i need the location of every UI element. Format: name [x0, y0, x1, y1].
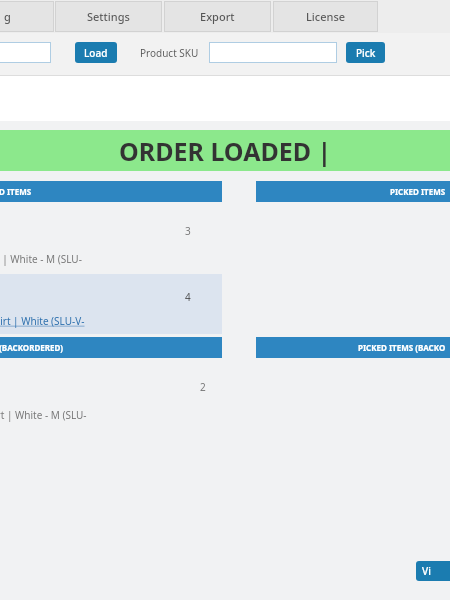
staticText: ORDER LOADED | — [119, 134, 332, 168]
staticText: t | White - M (SLU- — [0, 252, 82, 266]
button[interactable]: Pick — [346, 42, 385, 63]
staticText: Export — [200, 9, 235, 24]
staticText: PICKED ITEMS (BACKO — [358, 342, 446, 353]
staticText: Settings — [87, 9, 130, 24]
staticText: Pick — [356, 46, 376, 60]
staticText: 3 — [185, 224, 191, 238]
button[interactable]: TEMS (BACKORDERED) — [0, 337, 222, 358]
staticText: Vi — [422, 564, 431, 578]
staticText: irt | White - M (SLU- — [0, 408, 87, 422]
staticText: Load — [84, 46, 108, 60]
button[interactable]: PICKED ITEMS — [0, 181, 222, 202]
staticText: g — [4, 9, 11, 24]
staticText: 2 — [200, 380, 206, 394]
staticText: License — [306, 9, 346, 24]
button[interactable]: g — [0, 1, 54, 32]
staticText: 4 — [185, 290, 191, 304]
button[interactable] — [0, 274, 222, 334]
staticText: TEMS (BACKORDERED) — [0, 342, 64, 353]
button[interactable]: Text input — [0, 42, 51, 63]
button[interactable]: Load — [75, 42, 117, 63]
button[interactable]: PICKED ITEMS — [256, 181, 450, 202]
staticText: hirt | White (SLU-V- — [0, 314, 85, 328]
button[interactable]: Export — [164, 1, 271, 32]
button[interactable]: Text input — [209, 42, 337, 63]
staticText: PICKED ITEMS — [0, 186, 32, 197]
button[interactable]: View — [416, 561, 450, 581]
button[interactable]: ORDER LOADED | — [0, 130, 450, 171]
staticText: Product SKU — [140, 46, 199, 60]
button[interactable]: License — [273, 1, 378, 32]
button[interactable]: Settings — [55, 1, 162, 32]
staticText: PICKED ITEMS — [390, 186, 446, 197]
button[interactable]: PICKED ITEMS (BACKO — [256, 337, 450, 358]
